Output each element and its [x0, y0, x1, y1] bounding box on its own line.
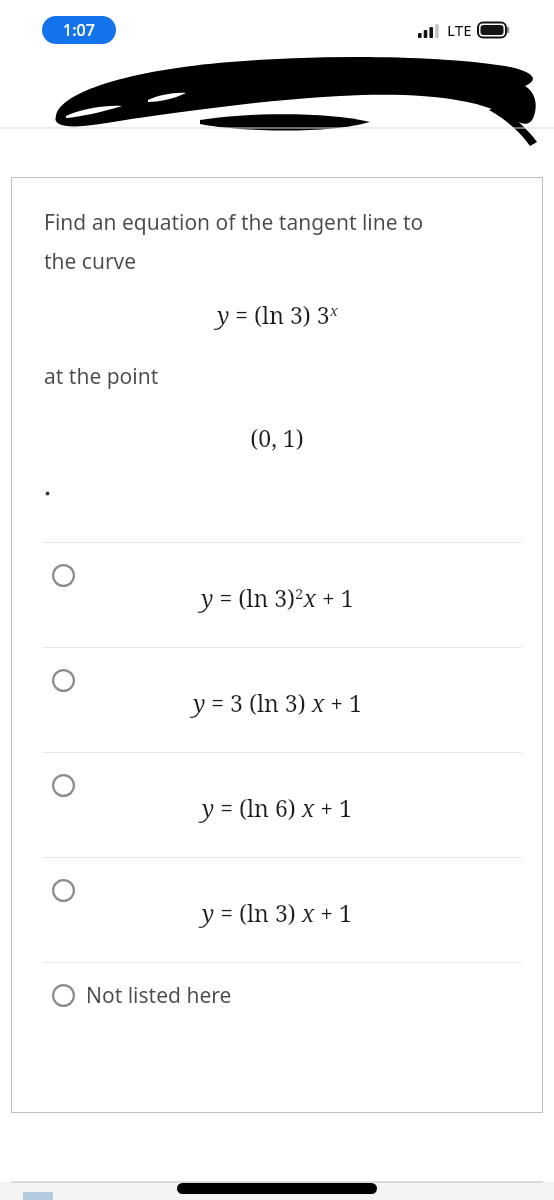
staticText: 1:07 [63, 19, 95, 41]
staticText: y = (ln 3) 3x [217, 299, 338, 330]
button[interactable]: Not listed here [11, 963, 543, 1027]
staticText: y = 3 (ln 3) x + 1 [193, 687, 362, 718]
other: Select answer [52, 564, 75, 587]
staticText: y = (ln 3)2x + 1 [201, 582, 354, 613]
staticText: at the point [44, 362, 159, 391]
other: Select answer [52, 774, 75, 797]
staticText: y = (ln 6) x + 1 [202, 792, 352, 823]
button[interactable]: Select answer [11, 543, 543, 647]
button[interactable]: Exit [487, 74, 533, 111]
staticText: Find an equation of the tangent line to … [44, 208, 424, 275]
staticText: Exit [490, 77, 530, 108]
button[interactable]: Select answer [11, 858, 543, 962]
button[interactable]: Select answer [11, 648, 543, 752]
other: Select answer [52, 879, 75, 902]
other: Select answer [52, 669, 75, 692]
staticText: LTE [447, 20, 472, 40]
staticText: y = (ln 3) x + 1 [202, 897, 352, 928]
button[interactable]: Select answer [11, 753, 543, 857]
staticText: (0, 1) [250, 422, 304, 453]
button[interactable]: 1:07 [42, 16, 116, 44]
staticText: Not listed here [86, 981, 232, 1010]
